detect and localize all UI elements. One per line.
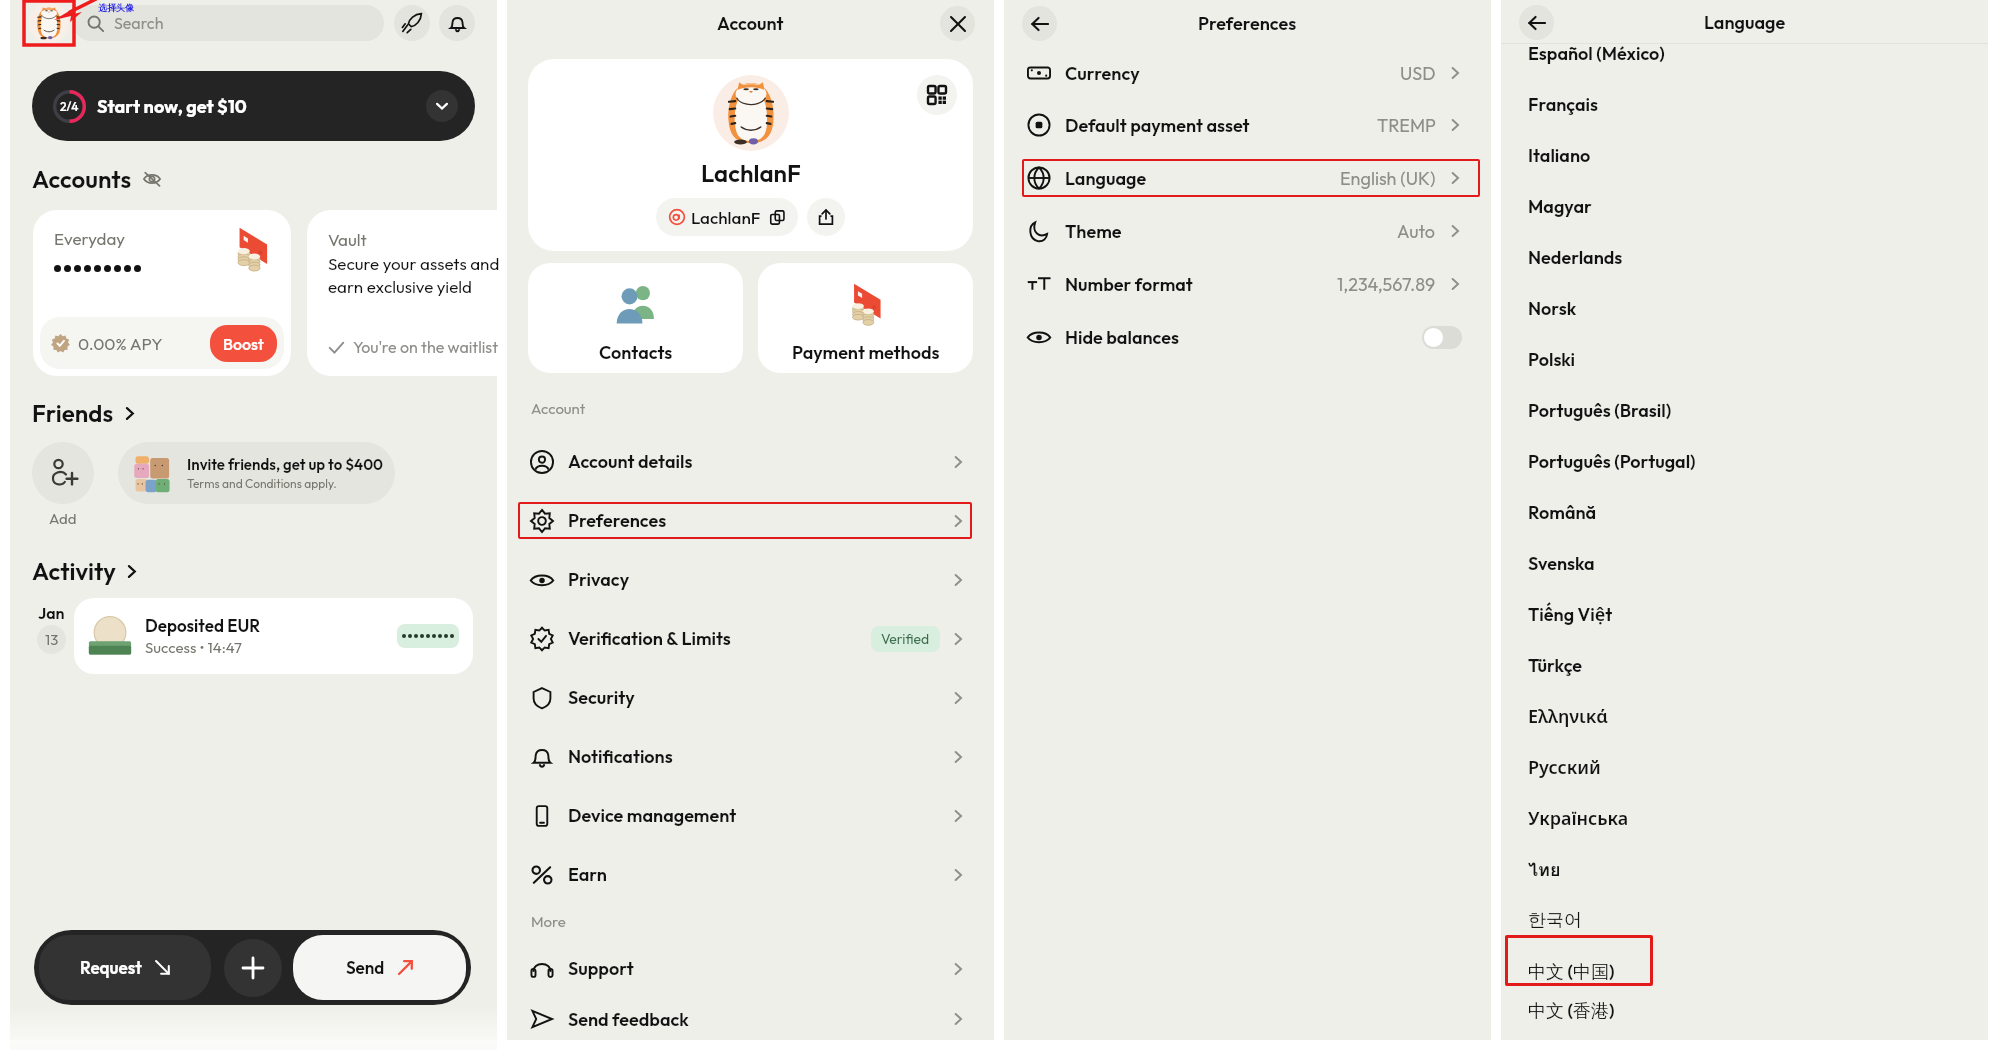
button[interactable]: Earn (507, 845, 994, 904)
button[interactable]: Friends (32, 398, 137, 428)
staticText: Español (México) (1528, 44, 1665, 65)
staticText: Currency (1065, 62, 1140, 85)
button[interactable]: Українська (1501, 793, 1988, 844)
button[interactable]: Contacts (528, 263, 743, 373)
button[interactable]: Vault (307, 210, 565, 376)
button[interactable]: Polski (1501, 334, 1988, 385)
button[interactable]: Activity (32, 556, 139, 586)
staticText: Auto (1397, 220, 1436, 243)
button[interactable]: Add friend (32, 442, 94, 504)
button[interactable]: Boost (210, 325, 277, 362)
button[interactable]: Verification & Limits (507, 609, 994, 668)
button[interactable]: Security (507, 668, 994, 727)
staticText: Success • 14:47 (145, 638, 242, 657)
staticText: Send feedback (568, 1008, 689, 1031)
button[interactable]: Preferences (507, 491, 994, 550)
button[interactable]: Device management (507, 786, 994, 845)
staticText: Add (49, 509, 77, 528)
staticText: Account (531, 399, 586, 418)
button[interactable]: Español (México) (1501, 44, 1988, 79)
button[interactable]: Türkçe (1501, 640, 1988, 691)
button[interactable]: Română (1501, 487, 1988, 538)
staticText: 0.00% APY (78, 333, 163, 354)
button[interactable]: Português (Brasil) (1501, 385, 1988, 436)
button[interactable]: 2/4 (32, 71, 475, 141)
staticText: Verified (881, 630, 930, 648)
staticText: Français (1528, 93, 1599, 116)
staticText: LachlanF (691, 207, 761, 228)
staticText: Language (1704, 11, 1786, 34)
button[interactable]: Payment methods (758, 263, 973, 373)
button[interactable]: Notifications (439, 5, 475, 41)
button[interactable]: Share (807, 198, 845, 236)
staticText: Ελληνικά (1528, 704, 1608, 729)
staticText: Number format (1065, 273, 1193, 296)
button[interactable]: Français (1501, 79, 1988, 130)
button[interactable]: Italiano (1501, 130, 1988, 181)
button[interactable]: Back (1519, 5, 1554, 40)
button[interactable]: Rewards (394, 5, 430, 41)
button[interactable]: Notifications (507, 727, 994, 786)
staticText: USD (1400, 62, 1436, 85)
button[interactable]: Invite friends, get up to $400 (118, 442, 395, 504)
button[interactable]: Privacy (507, 550, 994, 609)
button[interactable]: QR code (917, 75, 957, 115)
staticText: Secure your assets and earn exclusive yi… (328, 253, 510, 298)
staticText: Start now, get $10 (97, 95, 247, 118)
staticText: Account details (568, 450, 693, 473)
staticText: 한국어 (1528, 909, 1582, 932)
button[interactable]: Nederlands (1501, 232, 1988, 283)
button[interactable]: Close (940, 6, 975, 41)
button[interactable]: Profile (29, 3, 69, 43)
button[interactable]: Magyar (1501, 181, 1988, 232)
button[interactable]: Back (1022, 6, 1057, 41)
staticText: Vault (328, 229, 367, 250)
button[interactable]: Theme (1004, 205, 1491, 257)
button[interactable]: Deposited EUR (74, 598, 473, 674)
button[interactable]: Everyday (33, 210, 291, 376)
button[interactable]: Support (507, 939, 994, 998)
button[interactable]: Русский (1501, 742, 1988, 793)
staticText: 中文 (中国) (1528, 960, 1615, 983)
button[interactable]: Tiếng Việt (1501, 589, 1988, 640)
staticText: 13 (45, 630, 59, 649)
button[interactable]: Request (39, 935, 211, 1000)
button[interactable]: Language (1004, 152, 1491, 204)
button[interactable]: Hide balances (1004, 311, 1491, 363)
button[interactable]: Currency (1004, 47, 1491, 99)
staticText: ไทย (1528, 855, 1561, 884)
staticText: Jan (38, 603, 65, 623)
button[interactable]: 中文 (中国) (1501, 946, 1988, 997)
button[interactable]: 한국어 (1501, 895, 1988, 946)
staticText: Português (Portugal) (1528, 450, 1696, 473)
staticText: Türkçe (1528, 654, 1583, 677)
button[interactable]: Send feedback (507, 998, 994, 1040)
staticText: Hide balances (1065, 326, 1179, 349)
button[interactable]: Add (224, 939, 282, 997)
staticText: Русский (1528, 755, 1601, 780)
button[interactable]: LachlanF (656, 198, 798, 236)
staticText: Verification & Limits (568, 627, 731, 650)
staticText: Tiếng Việt (1528, 602, 1613, 627)
staticText: Payment methods (792, 341, 940, 364)
button[interactable]: Português (Portugal) (1501, 436, 1988, 487)
staticText: Deposited EUR (145, 615, 261, 636)
staticText: Default payment asset (1065, 114, 1250, 137)
staticText: Language (1065, 167, 1147, 190)
button[interactable]: Ελληνικά (1501, 691, 1988, 742)
button[interactable]: Search (73, 5, 384, 41)
button[interactable]: 中文 (香港) (1501, 997, 1988, 1024)
staticText: TREMP (1377, 114, 1436, 137)
staticText: Security (568, 686, 635, 709)
staticText: Norsk (1528, 297, 1577, 320)
staticText: You're on the waitlist (353, 337, 499, 357)
staticText: Boost (223, 334, 264, 354)
staticText: Magyar (1528, 195, 1592, 218)
button[interactable]: Account details (507, 432, 994, 491)
button[interactable]: Norsk (1501, 283, 1988, 334)
button[interactable]: ไทย (1501, 844, 1988, 895)
button[interactable]: Default payment asset (1004, 99, 1491, 151)
button[interactable]: Number format (1004, 258, 1491, 310)
button[interactable]: Send (293, 935, 466, 1000)
button[interactable]: Svenska (1501, 538, 1988, 589)
